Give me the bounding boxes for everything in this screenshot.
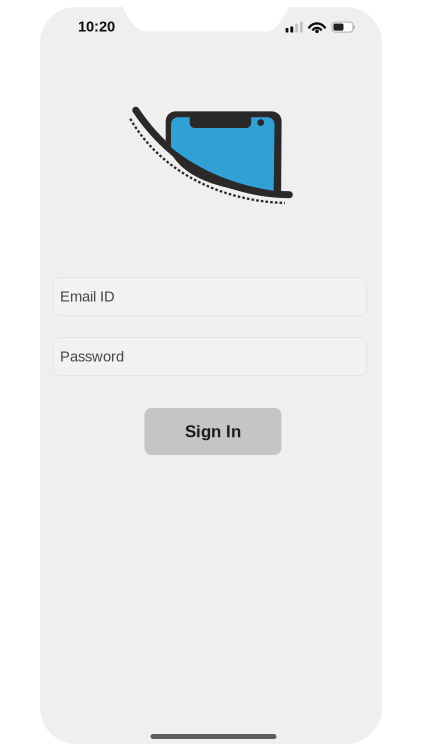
staticText: Sign In bbox=[185, 422, 241, 441]
button[interactable]: Email ID bbox=[53, 277, 366, 315]
staticText: 10:20 bbox=[78, 18, 115, 35]
staticText: Password bbox=[60, 348, 124, 365]
button[interactable]: Sign In bbox=[144, 408, 281, 455]
button[interactable]: Password bbox=[53, 337, 366, 375]
staticText: Email ID bbox=[60, 288, 115, 305]
